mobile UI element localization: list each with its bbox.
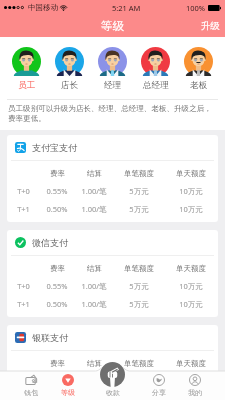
staticText: 5万元 xyxy=(129,186,149,196)
staticText: 支付宝支付 xyxy=(32,142,77,153)
staticText: 0.55% xyxy=(46,186,68,196)
staticText: 1.00/笔 xyxy=(81,186,107,196)
staticText: T+0 xyxy=(17,376,30,386)
staticText: 5万元 xyxy=(129,299,149,309)
button[interactable]: 店长 xyxy=(48,47,91,91)
staticText: 10万元 xyxy=(179,390,203,400)
button[interactable]: 微信支付 xyxy=(7,230,218,317)
staticText: 5万元 xyxy=(129,281,149,291)
staticText: 1.00/笔 xyxy=(81,376,107,386)
staticText: 经理 xyxy=(104,80,122,91)
button[interactable]: 钱包 xyxy=(12,371,49,400)
staticText: 微信支付 xyxy=(32,237,68,248)
staticText: 单天额度 xyxy=(176,264,206,273)
staticText: 1.00/笔 xyxy=(81,390,107,400)
staticText: 结算 xyxy=(87,264,102,273)
staticText: 0.50% xyxy=(46,390,68,400)
button[interactable]: 员工 xyxy=(5,47,48,91)
staticText: 银联支付 xyxy=(32,332,68,343)
staticText: 升级 xyxy=(201,20,220,32)
staticText: T+0 xyxy=(17,186,30,196)
staticText: 我的 xyxy=(188,388,202,397)
staticText: T+1 xyxy=(17,299,30,309)
staticText: 员工级别可以升级为店长、经理、总经理、老板、升级之后，费率更低。 xyxy=(8,104,218,124)
staticText: 收款 xyxy=(106,388,120,397)
staticText: 费率 xyxy=(50,264,65,273)
staticText: 老板 xyxy=(190,80,208,91)
staticText: 单天额度 xyxy=(176,169,206,178)
staticText: 分享 xyxy=(152,388,166,397)
staticText: 总经理 xyxy=(143,80,169,91)
button[interactable]: 升级 xyxy=(195,15,225,37)
button[interactable]: 收款 xyxy=(100,362,125,400)
staticText: 10万元 xyxy=(179,204,203,214)
staticText: 等级 xyxy=(101,19,124,33)
staticText: 100% xyxy=(186,3,206,13)
staticText: T+1 xyxy=(17,204,30,214)
staticText: 1.00/笔 xyxy=(81,299,107,309)
staticText: 1.00/笔 xyxy=(81,281,107,291)
staticText: 结算 xyxy=(87,359,102,368)
button[interactable]: 老板 xyxy=(177,47,220,91)
staticText: 单天额度 xyxy=(176,359,206,368)
button[interactable]: 支付宝支付 xyxy=(7,135,218,222)
staticText: 10万元 xyxy=(179,186,203,196)
button[interactable]: 总经理 xyxy=(134,47,177,91)
button[interactable]: 经理 xyxy=(91,47,134,91)
staticText: 单笔额度 xyxy=(124,264,154,273)
staticText: 员工 xyxy=(18,80,36,91)
staticText: 等级 xyxy=(61,388,75,397)
staticText: 0.50% xyxy=(46,204,68,214)
staticText: 5:21 AM xyxy=(112,3,141,13)
staticText: 10万元 xyxy=(179,376,203,386)
staticText: 店长 xyxy=(61,80,79,91)
staticText: 费率 xyxy=(50,359,65,368)
staticText: 10万元 xyxy=(179,281,203,291)
staticText: 中国移动 xyxy=(28,3,58,12)
staticText: 单笔额度 xyxy=(124,169,154,178)
staticText: T+1 xyxy=(17,390,30,400)
other: 收款 xyxy=(100,362,125,387)
staticText: 0.55% xyxy=(46,281,68,291)
staticText: 10万元 xyxy=(179,299,203,309)
staticText: 钱包 xyxy=(24,388,38,397)
staticText: 5万元 xyxy=(129,204,149,214)
button[interactable]: 分享 xyxy=(141,371,177,400)
staticText: 1.00/笔 xyxy=(81,204,107,214)
button[interactable]: 我的 xyxy=(177,371,213,400)
staticText: 结算 xyxy=(87,169,102,178)
button[interactable]: 银联支付 xyxy=(7,325,218,400)
staticText: 0.55% xyxy=(46,376,68,386)
staticText: 单笔额度 xyxy=(124,359,154,368)
staticText: 费率 xyxy=(50,169,65,178)
staticText: 0.50% xyxy=(46,299,68,309)
staticText: T+0 xyxy=(17,281,30,291)
button[interactable]: 等级 xyxy=(49,371,86,400)
